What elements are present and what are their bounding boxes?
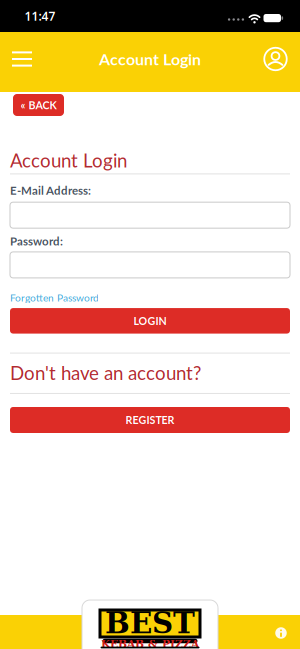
staticText: E-Mail Address: [10,183,91,197]
staticText: 11:47 [24,8,55,24]
staticText: « BACK [20,99,56,111]
button[interactable]: REGISTER [10,407,290,433]
button[interactable] [6,43,38,75]
staticText: Account Login [99,49,201,69]
button[interactable] [275,627,287,639]
button[interactable] [10,252,290,278]
staticText: REGISTER [125,414,174,426]
staticText: Password: [10,234,63,248]
button[interactable]: « BACK [13,94,64,116]
button[interactable] [10,202,290,228]
staticText: Account Login [10,149,127,171]
staticText: BEST [105,606,195,640]
staticText: KEBAB & PIZZA [101,638,199,649]
button[interactable] [264,47,287,71]
staticText: Don't have an account? [10,362,201,384]
staticText: Forgotten Password [10,291,99,304]
staticText: LOGIN [133,314,166,327]
button[interactable]: Forgotten Password [10,291,99,304]
button[interactable]: LOGIN [10,308,290,334]
